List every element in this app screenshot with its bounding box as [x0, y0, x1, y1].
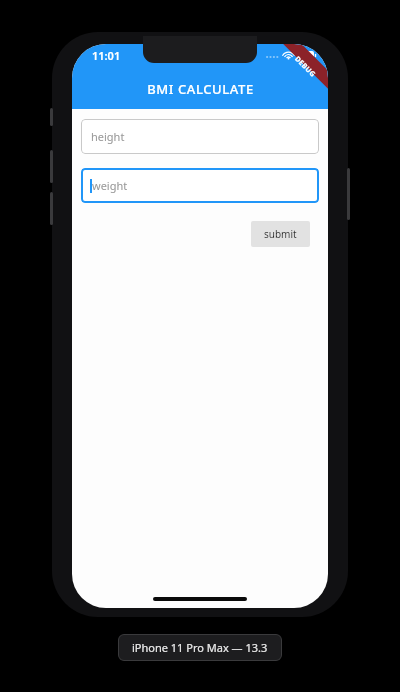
staticText: submit	[264, 227, 297, 241]
staticText: height	[91, 129, 125, 144]
button[interactable]: weight	[81, 168, 319, 203]
staticText: 11:01	[92, 48, 121, 63]
staticText: weight	[92, 178, 128, 193]
staticText: DEBUG	[292, 54, 318, 80]
button[interactable]: height	[81, 119, 319, 154]
staticText: BMI CALCULATE	[147, 80, 254, 98]
button[interactable]: submit	[251, 221, 310, 247]
staticText: iPhone 11 Pro Max — 13.3	[132, 640, 268, 655]
